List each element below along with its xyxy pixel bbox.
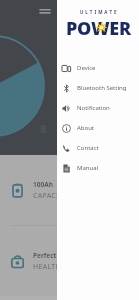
staticText: POWER [66,16,131,41]
staticText: Notification [77,104,110,112]
staticText: 100Ah [33,180,53,189]
button[interactable]: Contact [57,138,139,158]
staticText: U L T I M A T E [80,9,117,15]
staticText: CAPACITY [33,191,68,201]
staticText: Perfect [33,251,57,260]
staticText: HEALTHY [33,262,66,272]
button[interactable]: Manual [57,158,139,178]
staticText: Manual [77,164,99,172]
button[interactable]: 100Ah [0,155,139,225]
button[interactable]: Open navigation menu [38,5,52,19]
button[interactable]: Device [57,58,139,78]
button[interactable]: Close navigation menu [0,0,57,300]
button[interactable]: Notification [57,98,139,118]
staticText: Bluetooth Setting [77,84,127,92]
button[interactable]: About [57,118,139,138]
staticText: About [77,124,95,132]
staticText: Device [77,64,96,72]
button[interactable]: Bluetooth Setting [57,78,139,98]
button[interactable]: Perfect [0,226,139,296]
staticText: Contact [77,144,99,152]
